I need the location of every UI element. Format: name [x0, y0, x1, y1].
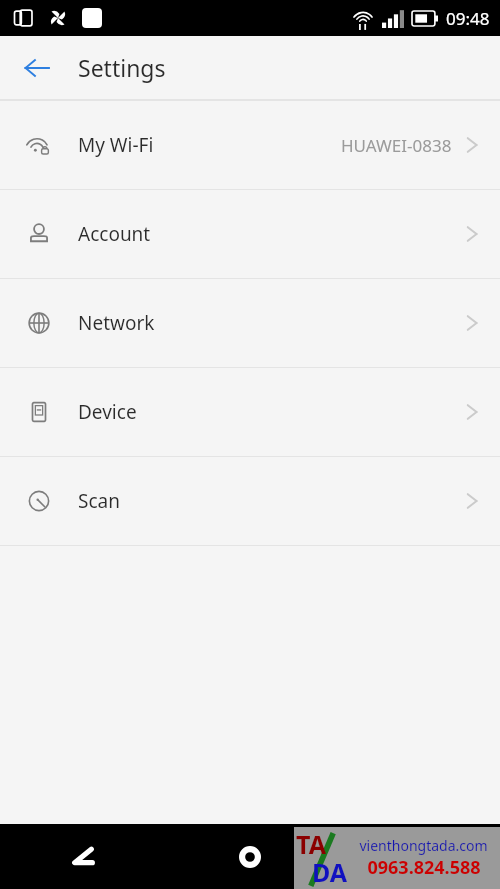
staticText: 0963.824.588 — [367, 855, 481, 880]
button[interactable]: Home — [166, 824, 333, 889]
staticText: DA — [312, 855, 348, 889]
button[interactable]: Back — [12, 43, 62, 93]
button[interactable]: My Wi-Fi — [0, 101, 500, 189]
staticText: 09:48 — [446, 7, 490, 30]
button[interactable]: Recents — [333, 824, 500, 889]
staticText: Settings — [78, 52, 166, 83]
staticText: HUAWEI-0838 — [341, 134, 452, 157]
button[interactable]: Device — [0, 368, 500, 456]
staticText: Scan — [78, 488, 120, 514]
button[interactable]: Network — [0, 279, 500, 367]
button[interactable]: Scan — [0, 457, 500, 545]
staticText: My Wi-Fi — [78, 132, 154, 158]
staticText: vienthongtada.com — [359, 836, 488, 855]
staticText: Network — [78, 310, 155, 336]
staticText: TA — [296, 827, 326, 861]
staticText: Account — [78, 221, 151, 247]
button[interactable]: Account — [0, 190, 500, 278]
button[interactable]: Back — [0, 824, 166, 889]
staticText: Device — [78, 399, 137, 425]
